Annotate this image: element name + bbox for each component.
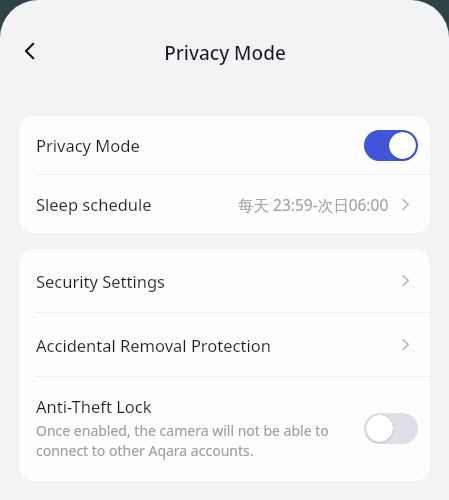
button[interactable]: Accidental Removal Protection (19, 313, 430, 376)
button[interactable]: Anti-Theft Lock (19, 377, 430, 481)
staticText: Accidental Removal Protection (36, 334, 271, 356)
button[interactable]: Privacy Mode toggle (364, 130, 418, 161)
staticText: Security Settings (36, 270, 165, 292)
staticText: Privacy Mode (164, 40, 286, 66)
button[interactable]: Privacy Mode (19, 116, 430, 174)
staticText: 每天 23:59-次日06:00 (238, 194, 389, 215)
button[interactable]: Sleep schedule (19, 175, 430, 233)
staticText: Privacy Mode (36, 134, 140, 156)
staticText: Once enabled, the camera will not be abl… (36, 421, 329, 461)
button[interactable]: Back (6, 27, 54, 75)
staticText: Sleep schedule (36, 193, 152, 215)
button[interactable]: Anti-Theft Lock toggle (364, 413, 418, 444)
button[interactable]: Security Settings (19, 249, 430, 312)
staticText: Anti-Theft Lock (36, 395, 152, 417)
